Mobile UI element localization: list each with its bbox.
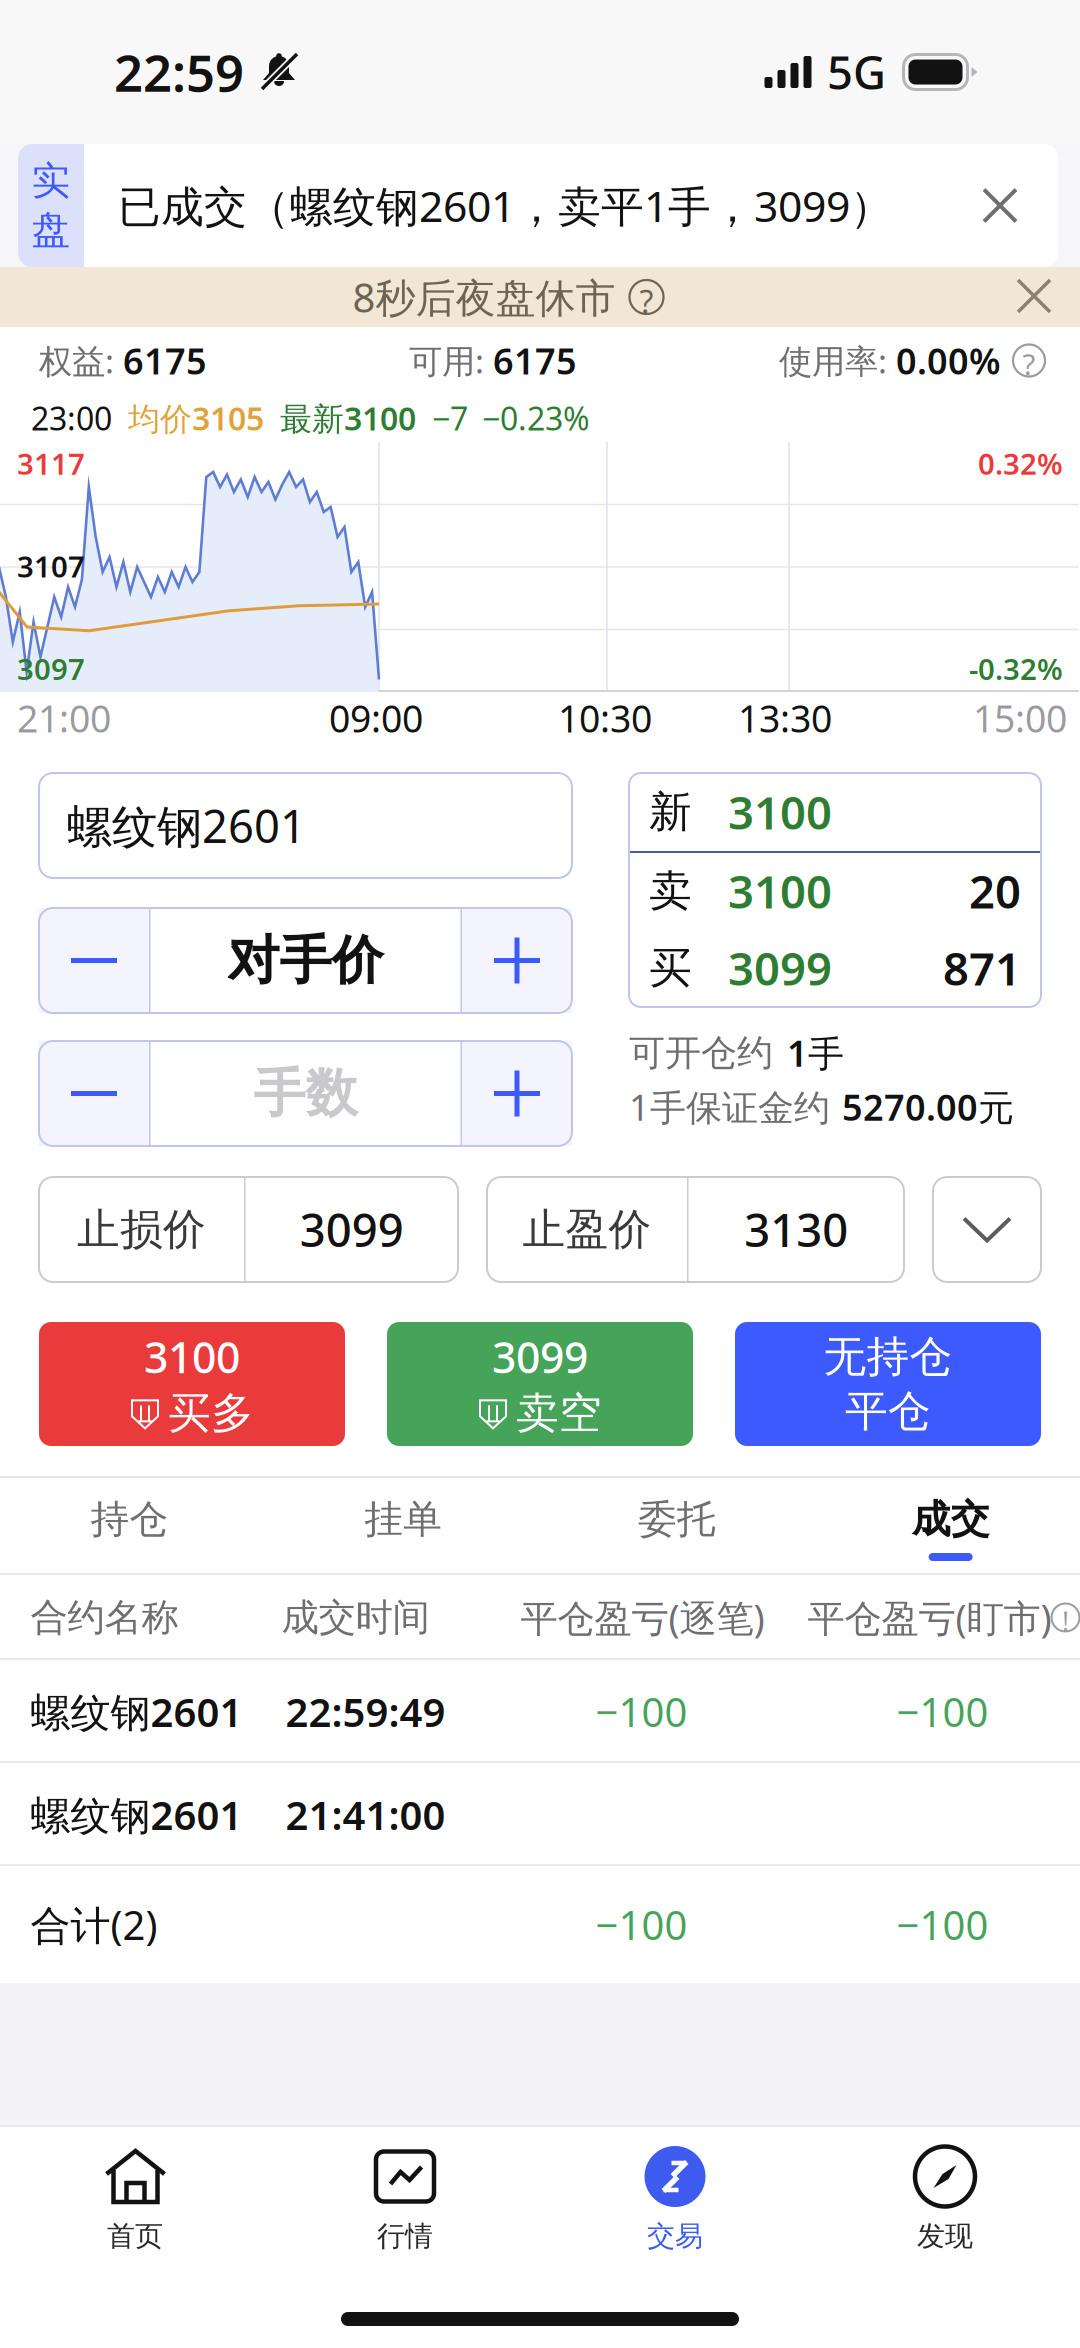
staticText: 09:00 bbox=[329, 693, 423, 743]
staticText: 已成交（螺纹钢2601，卖平1手，3099） bbox=[118, 177, 893, 234]
button[interactable]: 无持仓 bbox=[735, 1322, 1041, 1446]
staticText: −0.23% bbox=[482, 397, 590, 439]
staticText: 成交时间 bbox=[281, 1595, 429, 1640]
staticText: 挂单 bbox=[364, 1495, 442, 1543]
staticText: −100 bbox=[896, 1898, 988, 1951]
staticText: 5G bbox=[827, 42, 886, 102]
staticText: 止损价 bbox=[77, 1203, 206, 1256]
button[interactable]: 交易 bbox=[540, 2127, 810, 2273]
staticText: 新 bbox=[649, 786, 692, 838]
staticText: 23:00 bbox=[31, 397, 112, 439]
staticText: 权益: bbox=[39, 338, 123, 383]
staticText: 22:59 bbox=[114, 38, 244, 106]
staticText: 买 bbox=[649, 942, 692, 994]
staticText: 3097 bbox=[17, 649, 85, 688]
staticText: 最新3100 bbox=[280, 397, 416, 439]
staticText: 对手价 bbox=[227, 929, 383, 992]
button[interactable]: 实 bbox=[0, 144, 1080, 267]
staticText: 5270.00元 bbox=[842, 1083, 1014, 1131]
staticText: 平仓盈亏(逐笔) bbox=[520, 1593, 764, 1642]
staticText: −100 bbox=[595, 1898, 687, 1951]
staticText: 发现 bbox=[917, 2219, 973, 2253]
staticText: 3117 bbox=[17, 444, 85, 483]
staticText: 卖空 bbox=[516, 1387, 602, 1439]
button[interactable]: 持仓 bbox=[0, 1478, 266, 1575]
button[interactable]: Increase 手数 bbox=[462, 1041, 572, 1146]
button[interactable]: 螺纹钢2601 bbox=[0, 1660, 1080, 1763]
button[interactable]: 3100 bbox=[39, 1322, 345, 1446]
staticText: 1手 bbox=[787, 1029, 844, 1077]
staticText: 实 bbox=[31, 157, 70, 204]
staticText: 委托 bbox=[638, 1495, 716, 1543]
staticText: 0.00% bbox=[896, 337, 1001, 384]
staticText: 合约名称 bbox=[30, 1595, 178, 1640]
staticText: 可开仓约 bbox=[629, 1031, 773, 1075]
button[interactable]: 止盈价 bbox=[487, 1177, 904, 1282]
staticText: 3100 bbox=[728, 861, 832, 921]
staticText: 21:41:00 bbox=[285, 1788, 445, 1841]
staticText: 0.32% bbox=[978, 444, 1063, 483]
button[interactable]: 止损价 bbox=[39, 1177, 458, 1282]
staticText: 8秒后夜盘休市 bbox=[352, 270, 615, 323]
staticText: 卖 bbox=[649, 865, 692, 917]
button[interactable]: 成交 bbox=[814, 1478, 1080, 1575]
staticText: ! bbox=[1062, 1603, 1069, 1631]
staticText: 螺纹钢2601 bbox=[67, 795, 306, 856]
button[interactable]: 螺纹钢2601 bbox=[0, 1763, 1080, 1866]
staticText: 10:30 bbox=[558, 693, 652, 743]
staticText: 均价3105 bbox=[128, 397, 264, 439]
staticText: ? bbox=[639, 280, 653, 314]
staticText: 6175 bbox=[493, 337, 577, 384]
staticText: 21:00 bbox=[17, 693, 111, 743]
staticText: −100 bbox=[595, 1685, 687, 1738]
button[interactable]: 发现 bbox=[810, 2127, 1080, 2273]
staticText: 3099 bbox=[492, 1328, 588, 1385]
staticText: −100 bbox=[896, 1685, 988, 1738]
staticText: 成交 bbox=[912, 1495, 990, 1543]
button[interactable]: 3099 bbox=[387, 1322, 693, 1446]
staticText: 22:59:49 bbox=[285, 1685, 445, 1738]
staticText: 盘 bbox=[31, 206, 70, 254]
staticText: 持仓 bbox=[90, 1495, 168, 1543]
staticText: 3100 bbox=[728, 782, 832, 842]
staticText: 平仓 bbox=[845, 1385, 931, 1437]
staticText: 6175 bbox=[123, 337, 207, 384]
button[interactable]: 挂单 bbox=[266, 1478, 540, 1575]
staticText: 平仓盈亏(盯市) bbox=[807, 1593, 1051, 1642]
button[interactable]: Decrease 手数 bbox=[39, 1041, 149, 1146]
staticText: 无持仓 bbox=[823, 1331, 952, 1383]
button[interactable]: More options bbox=[933, 1177, 1041, 1282]
button[interactable]: Increase 对手价 bbox=[462, 908, 572, 1013]
staticText: −7 bbox=[432, 397, 468, 439]
staticText: 合计(2) bbox=[30, 1898, 157, 1951]
staticText: 13:30 bbox=[738, 693, 832, 743]
button[interactable]: Decrease 对手价 bbox=[39, 908, 149, 1013]
button[interactable]: 委托 bbox=[540, 1478, 814, 1575]
staticText: -0.32% bbox=[969, 649, 1063, 688]
staticText: 3100 bbox=[144, 1328, 240, 1385]
staticText: 3099 bbox=[728, 938, 832, 998]
staticText: 首页 bbox=[107, 2219, 163, 2253]
staticText: 手数 bbox=[253, 1062, 357, 1125]
staticText: 行情 bbox=[377, 2219, 433, 2253]
staticText: 1手保证金约 bbox=[629, 1083, 830, 1131]
staticText: 止盈价 bbox=[522, 1203, 651, 1256]
staticText: 可用: bbox=[409, 338, 493, 383]
staticText: 螺纹钢2601 bbox=[30, 1685, 242, 1738]
staticText: 3107 bbox=[17, 546, 85, 585]
staticText: 交易 bbox=[647, 2219, 703, 2253]
staticText: 15:00 bbox=[973, 693, 1067, 743]
staticText: 买多 bbox=[168, 1387, 254, 1439]
button[interactable]: Close notice bbox=[1016, 278, 1080, 316]
staticText: 3130 bbox=[744, 1199, 848, 1260]
staticText: 螺纹钢2601 bbox=[30, 1788, 242, 1841]
staticText: ? bbox=[1022, 344, 1035, 376]
staticText: 871 bbox=[943, 938, 1021, 998]
button[interactable]: 螺纹钢2601 bbox=[39, 773, 572, 878]
button[interactable]: 首页 bbox=[0, 2127, 270, 2273]
staticText: 使用率: bbox=[779, 338, 896, 383]
button[interactable]: 合计(2) bbox=[0, 1866, 1080, 1983]
button[interactable]: 行情 bbox=[270, 2127, 540, 2273]
staticText: 20 bbox=[969, 861, 1021, 921]
staticText: 3099 bbox=[300, 1199, 404, 1260]
